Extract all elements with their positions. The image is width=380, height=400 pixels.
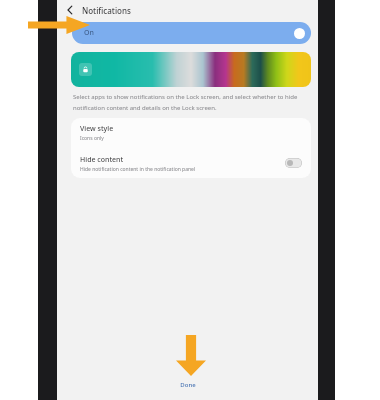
button[interactable]: Back [62,2,78,18]
staticText: Done [180,381,196,389]
staticText: Hide notification content in the notific… [80,166,196,173]
staticText: On [84,28,94,38]
staticText: Select apps to show notifications on the… [73,93,301,112]
button[interactable]: Lock screen notification preview [71,52,311,87]
button[interactable]: Hide content [71,148,311,178]
staticText: Notifications [82,5,131,16]
staticText: Icons only [80,135,104,142]
button[interactable]: Done [57,378,318,392]
staticText: Hide content [80,155,124,165]
staticText: View style [80,124,114,134]
button[interactable]: On [72,22,311,44]
button[interactable]: View style [71,118,311,148]
